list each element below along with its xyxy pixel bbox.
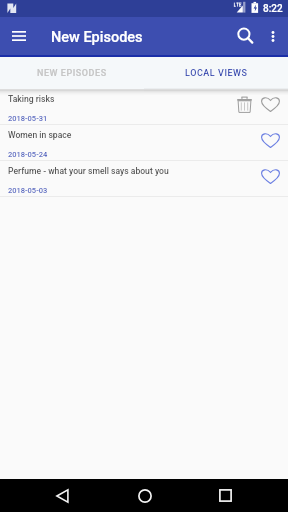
button[interactable]: Search	[232, 23, 258, 49]
staticText: 2018-05-31	[8, 114, 48, 123]
button[interactable]: Women in space	[0, 125, 288, 161]
button[interactable]: Taking risks	[0, 89, 288, 125]
staticText: LOCAL VIEWS	[185, 68, 248, 79]
button[interactable]: Perfume - what your smell says about you	[0, 161, 288, 197]
button[interactable]: Home	[128, 479, 161, 512]
button[interactable]: More options	[261, 24, 285, 48]
button[interactable]: Recent apps	[209, 479, 242, 512]
staticText: NEW EPISODES	[37, 68, 107, 79]
button[interactable]: Favorite	[256, 126, 284, 154]
button[interactable]: Back	[46, 479, 79, 512]
staticText: Taking risks	[8, 94, 55, 104]
button[interactable]: Delete	[230, 90, 258, 118]
staticText: 8:22	[263, 3, 283, 15]
button[interactable]: LOCAL VIEWS	[144, 57, 288, 89]
staticText: 2018-05-24	[8, 150, 48, 159]
button[interactable]: Open navigation drawer	[6, 23, 32, 49]
button[interactable]: Favorite	[256, 162, 284, 190]
button[interactable]: Favorite	[256, 90, 284, 118]
staticText: Women in space	[8, 130, 72, 140]
staticText: 2018-05-03	[8, 186, 48, 195]
button[interactable]: NEW EPISODES	[0, 57, 144, 89]
staticText: Perfume - what your smell says about you	[8, 166, 169, 176]
staticText: New Episodes	[51, 29, 143, 46]
